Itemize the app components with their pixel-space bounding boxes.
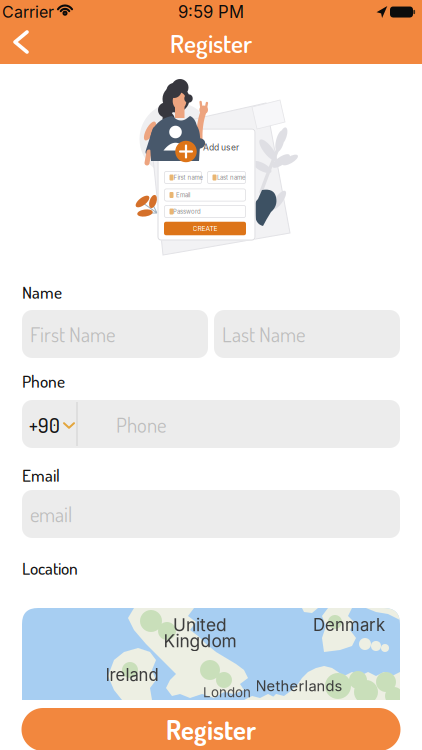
staticText: Email	[22, 464, 60, 486]
staticText: Last name	[217, 174, 245, 181]
staticText: First name	[173, 174, 202, 181]
staticText: Ireland	[105, 665, 158, 685]
staticText: Netherlands	[255, 677, 342, 695]
staticText: Location	[22, 557, 78, 579]
staticText: Register	[170, 27, 252, 59]
staticText: email	[30, 501, 72, 527]
staticText: Phone	[116, 411, 166, 437]
staticText: +90	[29, 412, 60, 438]
staticText: Kingdom	[163, 630, 236, 651]
button[interactable]: Phone	[22, 400, 400, 448]
staticText: CREATE	[192, 224, 217, 233]
staticText: Register	[166, 713, 256, 746]
staticText: Phone	[22, 370, 65, 392]
button[interactable]: Back	[0, 22, 44, 62]
staticText: 9:59 PM	[178, 2, 244, 22]
staticText: Name	[22, 281, 62, 303]
button[interactable]: Last Name	[214, 310, 400, 358]
staticText: Carrier	[2, 2, 54, 22]
staticText: First Name	[30, 321, 115, 347]
staticText: Last Name	[222, 321, 305, 347]
button[interactable]: Register	[21, 708, 400, 750]
staticText: Denmark	[313, 615, 385, 635]
button[interactable]: email	[22, 490, 400, 538]
button[interactable]: First Name	[22, 310, 208, 358]
staticText: United	[173, 614, 227, 635]
staticText: Add user	[203, 142, 239, 153]
staticText: Email	[176, 191, 190, 199]
staticText: Password	[173, 208, 201, 215]
staticText: London	[203, 684, 251, 700]
